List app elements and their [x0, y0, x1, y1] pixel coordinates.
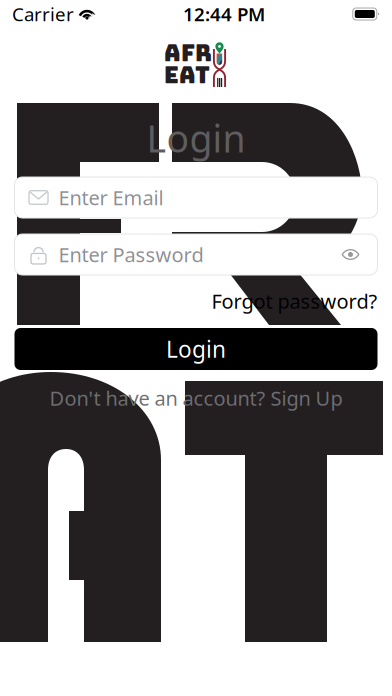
staticText: Login	[166, 334, 226, 364]
staticText: Don't have an account?	[49, 385, 265, 411]
staticText: EAT	[164, 60, 210, 90]
staticText: Enter Email	[58, 184, 163, 211]
staticText: Carrier	[12, 2, 74, 26]
button[interactable]: Forgot password?	[211, 288, 377, 314]
staticText: Login	[146, 113, 245, 163]
button[interactable]: Login	[14, 328, 377, 370]
staticText: Forgot password?	[211, 288, 377, 314]
button[interactable]: Show password	[335, 239, 365, 269]
button[interactable]: Sign Up	[270, 385, 342, 411]
staticText: 12:44 PM	[183, 2, 265, 26]
staticText: AFR	[164, 38, 212, 68]
staticText: Sign Up	[270, 385, 342, 411]
staticText: Enter Password	[58, 241, 203, 268]
